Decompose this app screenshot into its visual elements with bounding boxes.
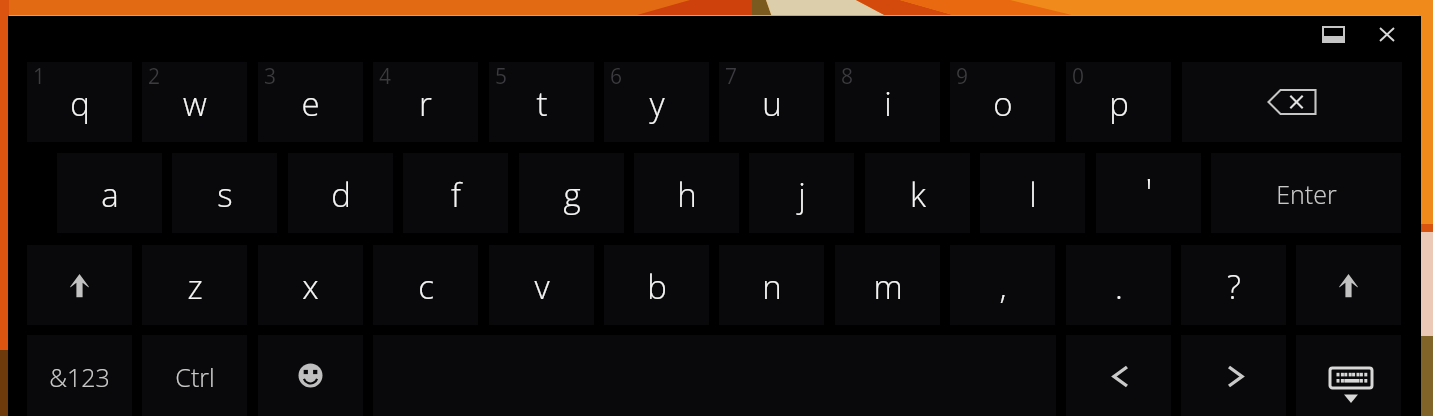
staticText: w (183, 81, 207, 126)
staticText: 4 (379, 62, 392, 91)
staticText: 0 (1072, 62, 1085, 91)
staticText: , (999, 264, 1007, 309)
button[interactable]: 3 (258, 62, 363, 142)
staticText: 1 (33, 62, 46, 91)
button[interactable]: l (980, 153, 1085, 233)
staticText: p (1109, 81, 1129, 126)
staticText: f (451, 172, 461, 217)
button[interactable]: 0 (1066, 62, 1171, 142)
staticText: x (302, 264, 319, 309)
button[interactable]: Cursor right (1181, 335, 1286, 416)
button[interactable]: b (604, 245, 709, 325)
button[interactable]: s (172, 153, 277, 233)
button[interactable]: Ctrl (142, 335, 247, 416)
staticText: l (1029, 172, 1037, 217)
staticText: 9 (956, 62, 969, 91)
button[interactable]: Emoji (258, 335, 363, 416)
button[interactable]: ? (1181, 245, 1286, 325)
staticText: t (536, 81, 548, 126)
button[interactable]: Hide keyboard (1296, 335, 1401, 416)
staticText: a (101, 172, 119, 217)
button[interactable]: &123 (27, 335, 132, 416)
staticText: k (910, 172, 926, 217)
button[interactable]: j (749, 153, 854, 233)
staticText: u (762, 81, 782, 126)
staticText: 5 (495, 62, 508, 91)
button[interactable]: Shift (1296, 245, 1401, 325)
staticText: s (217, 172, 233, 217)
staticText: r (419, 81, 432, 126)
staticText: n (762, 264, 782, 309)
button[interactable]: h (634, 153, 739, 233)
staticText: Enter (1276, 177, 1337, 211)
staticText: &123 (49, 360, 110, 394)
button[interactable]: 7 (719, 62, 824, 142)
button[interactable]: d (288, 153, 393, 233)
button[interactable]: Cursor left (1066, 335, 1171, 416)
button[interactable]: Minimize (1304, 13, 1362, 55)
button[interactable]: . (1066, 245, 1171, 325)
staticText: b (647, 264, 667, 309)
staticText: q (70, 81, 90, 126)
button[interactable]: 2 (142, 62, 247, 142)
button[interactable]: 4 (373, 62, 478, 142)
button[interactable]: k (865, 153, 970, 233)
staticText: . (1115, 264, 1123, 309)
staticText: y (649, 81, 665, 126)
button[interactable]: Enter (1211, 153, 1401, 233)
staticText: v (534, 264, 550, 309)
button[interactable]: a (57, 153, 162, 233)
button[interactable]: Close (1359, 13, 1415, 55)
button[interactable]: v (489, 245, 594, 325)
button[interactable]: Backspace (1182, 62, 1402, 142)
staticText: g (563, 172, 581, 217)
button[interactable]: n (719, 245, 824, 325)
staticText: 6 (610, 62, 623, 91)
staticText: ? (1227, 264, 1241, 309)
button[interactable]: 5 (489, 62, 594, 142)
button[interactable]: m (835, 245, 940, 325)
button[interactable]: c (373, 245, 478, 325)
button[interactable]: 1 (27, 62, 132, 142)
staticText: 3 (264, 62, 277, 91)
button[interactable]: , (950, 245, 1055, 325)
button[interactable]: g (519, 153, 624, 233)
button[interactable]: ' (1096, 153, 1201, 233)
button[interactable]: f (403, 153, 508, 233)
staticText: 8 (841, 62, 854, 91)
button[interactable]: x (258, 245, 363, 325)
staticText: d (331, 172, 351, 217)
staticText: ' (1145, 166, 1153, 218)
staticText: c (418, 264, 434, 309)
staticText: Ctrl (175, 360, 215, 394)
staticText: j (798, 172, 806, 217)
staticText: 7 (725, 62, 738, 91)
staticText: e (301, 81, 320, 126)
staticText: i (884, 81, 892, 126)
staticText: h (677, 172, 697, 217)
staticText: 2 (148, 62, 161, 91)
staticText: z (187, 264, 203, 309)
button[interactable]: Shift (27, 245, 132, 325)
button[interactable]: 9 (950, 62, 1055, 142)
button[interactable]: z (142, 245, 247, 325)
button[interactable]: 6 (604, 62, 709, 142)
staticText: o (993, 81, 1013, 126)
button[interactable]: 8 (835, 62, 940, 142)
staticText: m (873, 264, 903, 309)
